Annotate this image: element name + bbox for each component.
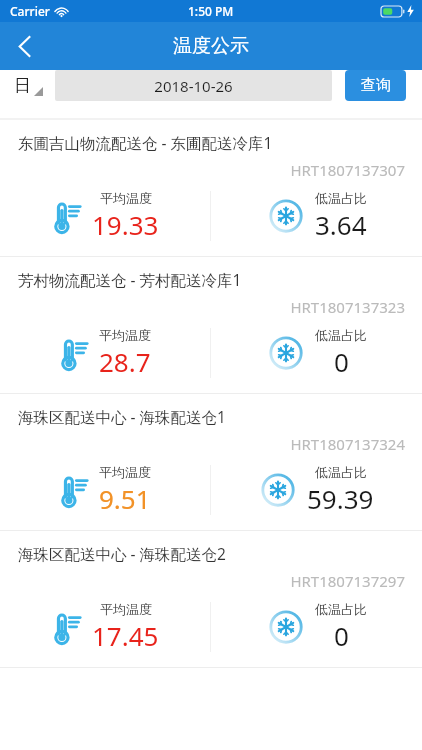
staticText: 9.51 xyxy=(99,481,151,516)
staticText: 0 xyxy=(334,618,349,653)
button[interactable]: 日 xyxy=(14,75,45,96)
staticText: 低温占比 xyxy=(315,327,367,343)
staticText: 低温占比 xyxy=(315,601,367,617)
staticText: 芳村物流配送仓 - 芳村配送冷库1 xyxy=(18,269,242,290)
staticText: 2018-10-26 xyxy=(154,76,233,96)
button[interactable]: 东圃吉山物流配送仓 - 东圃配送冷库1 xyxy=(0,120,422,256)
button[interactable]: 查询 xyxy=(345,70,406,101)
staticText: HRT1807137297 xyxy=(0,571,405,591)
button[interactable]: 芳村物流配送仓 - 芳村配送冷库1 xyxy=(0,257,422,393)
staticText: 平均温度 xyxy=(100,190,152,206)
staticText: 温度公示 xyxy=(173,34,249,58)
staticText: 1:50 PM xyxy=(188,3,234,19)
button[interactable]: 海珠区配送中心 - 海珠配送仓2 xyxy=(0,531,422,667)
staticText: HRT1807137324 xyxy=(0,434,405,454)
staticText: 海珠区配送中心 - 海珠配送仓2 xyxy=(18,543,226,564)
staticText: 日 xyxy=(14,75,31,96)
staticText: 19.33 xyxy=(92,207,159,242)
staticText: 东圃吉山物流配送仓 - 东圃配送冷库1 xyxy=(18,132,273,153)
staticText: HRT1807137307 xyxy=(0,160,405,180)
staticText: 查询 xyxy=(361,76,391,95)
staticText: 17.45 xyxy=(92,618,159,653)
staticText: 3.64 xyxy=(315,207,367,242)
staticText: 28.7 xyxy=(99,344,151,379)
staticText: 低温占比 xyxy=(315,464,367,480)
staticText: 海珠区配送中心 - 海珠配送仓1 xyxy=(18,406,226,427)
staticText: 59.39 xyxy=(307,481,374,516)
button[interactable]: 海珠区配送中心 - 海珠配送仓1 xyxy=(0,394,422,530)
staticText: 平均温度 xyxy=(100,601,152,617)
staticText: 平均温度 xyxy=(99,327,151,343)
staticText: HRT1807137323 xyxy=(0,297,405,317)
staticText: 低温占比 xyxy=(315,190,367,206)
staticText: Carrier xyxy=(10,3,50,19)
button[interactable]: Back xyxy=(0,22,48,70)
button[interactable]: 2018-10-26 xyxy=(55,70,332,101)
staticText: 平均温度 xyxy=(99,464,151,480)
staticText: 0 xyxy=(334,344,349,379)
